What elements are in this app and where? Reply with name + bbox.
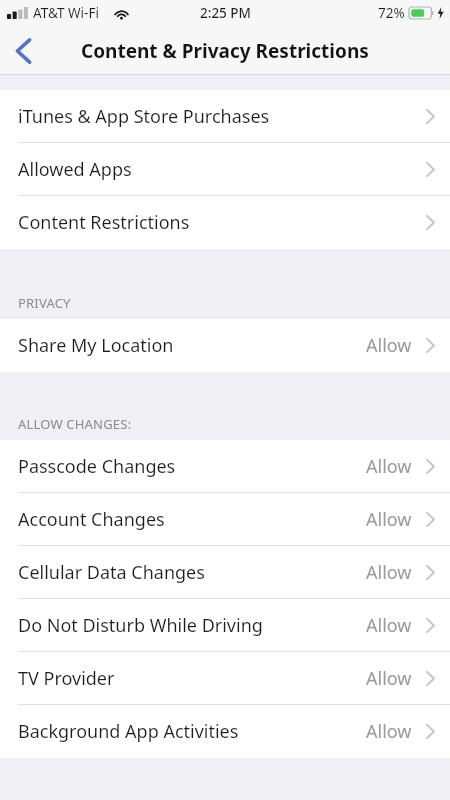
staticText: 2:25 PM xyxy=(200,4,251,22)
button[interactable]: Account Changes xyxy=(0,493,450,546)
button[interactable]: Do Not Disturb While Driving xyxy=(0,599,450,652)
button[interactable]: Cellular Data Changes xyxy=(0,546,450,599)
staticText: Allow xyxy=(366,666,412,691)
staticText: Allow xyxy=(366,560,412,585)
staticText: Allow xyxy=(366,719,412,744)
staticText: Cellular Data Changes xyxy=(18,560,205,585)
staticText: Allow xyxy=(366,333,412,358)
button[interactable]: Background App Activities xyxy=(0,705,450,758)
staticText: AT&T Wi-Fi xyxy=(33,4,99,22)
button[interactable]: Content Restrictions xyxy=(0,196,450,249)
button[interactable]: TV Provider xyxy=(0,652,450,705)
staticText: Allow xyxy=(366,613,412,638)
staticText: Account Changes xyxy=(18,507,165,532)
staticText: Content Restrictions xyxy=(18,210,190,235)
staticText: Allowed Apps xyxy=(18,157,132,182)
button[interactable]: Passcode Changes xyxy=(0,440,450,493)
staticText: Background App Activities xyxy=(18,719,239,744)
staticText: iTunes & App Store Purchases xyxy=(18,104,270,129)
button[interactable]: Allowed Apps xyxy=(0,143,450,196)
button[interactable]: Share My Location xyxy=(0,319,450,372)
staticText: Content & Privacy Restrictions xyxy=(81,38,369,64)
staticText: Allow xyxy=(366,454,412,479)
button[interactable]: iTunes & App Store Purchases xyxy=(0,90,450,143)
staticText: PRIVACY xyxy=(18,294,71,312)
staticText: Do Not Disturb While Driving xyxy=(18,613,263,638)
staticText: Allow xyxy=(366,507,412,532)
staticText: 72% xyxy=(378,4,405,22)
staticText: ALLOW CHANGES: xyxy=(18,415,132,433)
staticText: Share My Location xyxy=(18,333,174,358)
staticText: TV Provider xyxy=(18,666,115,691)
staticText: Passcode Changes xyxy=(18,454,176,479)
button[interactable]: Back xyxy=(0,26,46,75)
